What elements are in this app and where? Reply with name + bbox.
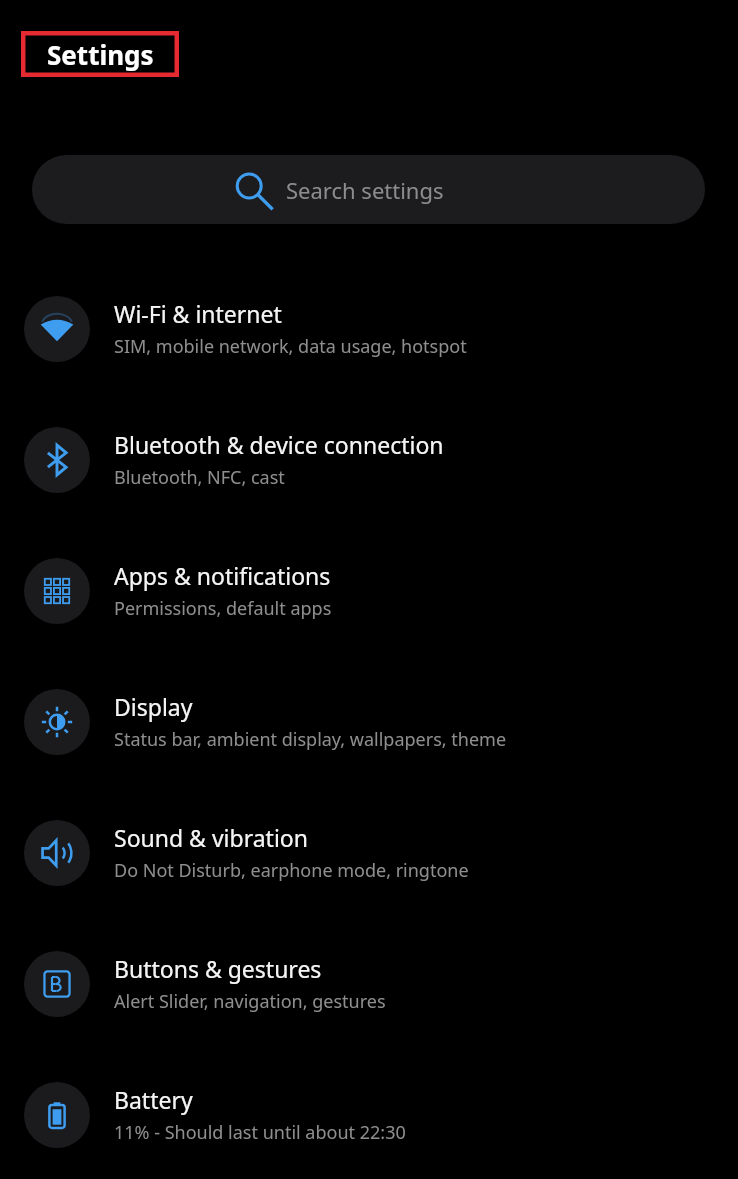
staticText: Alert Slider, navigation, gestures <box>114 989 386 1014</box>
staticText: Status bar, ambient display, wallpapers,… <box>114 727 507 752</box>
button[interactable]: Settings <box>21 31 179 77</box>
staticText: Permissions, default apps <box>114 596 332 621</box>
staticText: Settings <box>47 37 154 72</box>
staticText: Display <box>114 691 193 722</box>
staticText: Bluetooth, NFC, cast <box>114 465 285 490</box>
staticText: Sound & vibration <box>114 822 308 853</box>
staticText: Wi-Fi & internet <box>114 298 282 329</box>
staticText: Search settings <box>286 175 444 205</box>
staticText: Do Not Disturb, earphone mode, ringtone <box>114 858 469 883</box>
staticText: Buttons & gestures <box>114 953 322 984</box>
button[interactable]: Search settings <box>32 155 705 224</box>
staticText: Battery <box>114 1084 193 1115</box>
button[interactable]: Battery <box>0 1049 738 1179</box>
button[interactable]: Sound & vibration <box>0 787 738 918</box>
staticText: 11% - Should last until about 22:30 <box>114 1120 406 1145</box>
button[interactable]: Display <box>0 656 738 787</box>
button[interactable]: Wi-Fi & internet <box>0 263 738 394</box>
staticText: SIM, mobile network, data usage, hotspot <box>114 334 467 359</box>
button[interactable]: Buttons & gestures <box>0 918 738 1049</box>
button[interactable]: Bluetooth & device connection <box>0 394 738 525</box>
staticText: Apps & notifications <box>114 560 331 591</box>
button[interactable]: Apps & notifications <box>0 525 738 656</box>
staticText: Bluetooth & device connection <box>114 429 444 460</box>
